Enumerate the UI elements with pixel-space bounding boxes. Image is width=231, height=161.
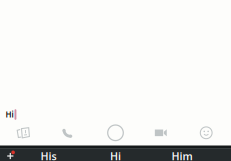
button[interactable]: His — [15, 148, 82, 161]
button[interactable]: Apps — [0, 148, 20, 161]
staticText: Hi — [110, 149, 121, 161]
staticText: Him — [171, 149, 192, 161]
button[interactable]: Emoji — [184, 122, 228, 144]
button[interactable]: Record — [93, 122, 137, 144]
button[interactable]: Handwriting — [1, 122, 45, 144]
button[interactable]: Hi — [82, 148, 149, 161]
staticText: His — [40, 149, 56, 161]
staticText: Hi — [6, 109, 14, 120]
button[interactable]: Him — [149, 148, 215, 161]
button[interactable]: Video message — [139, 122, 183, 144]
button[interactable]: Audio message — [45, 122, 89, 144]
